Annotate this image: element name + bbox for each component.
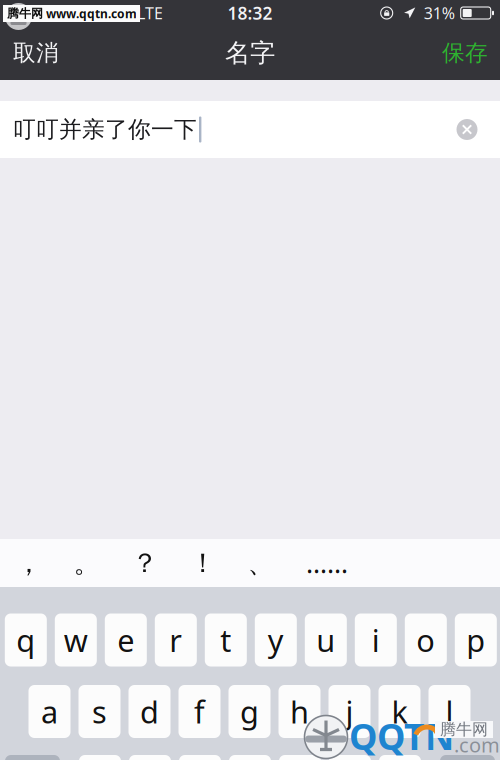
button[interactable]: 保存: [430, 26, 500, 80]
button[interactable]: l: [428, 685, 470, 738]
button[interactable]: j: [328, 685, 370, 738]
staticText: 、: [247, 547, 274, 579]
staticText: 31%: [424, 2, 455, 24]
staticText: LTE: [137, 2, 163, 24]
staticText: ……: [306, 545, 348, 581]
staticText: 腾牛网: [440, 720, 488, 739]
button[interactable]: ……: [290, 539, 364, 587]
staticText: g: [240, 691, 259, 732]
staticText: p: [466, 620, 485, 660]
staticText: 取消: [13, 39, 59, 67]
button[interactable]: t: [205, 613, 247, 666]
staticText: ？: [131, 547, 158, 579]
button[interactable]: d: [128, 685, 170, 738]
button[interactable]: q: [5, 613, 47, 666]
staticText: 叮叮并亲了你一下: [13, 116, 197, 143]
staticText: .com: [454, 731, 500, 758]
staticText: f: [194, 691, 205, 732]
button[interactable]: x: [129, 755, 171, 760]
staticText: w: [64, 620, 88, 660]
button[interactable]: p: [455, 613, 497, 666]
staticText: ，: [15, 547, 42, 579]
button[interactable]: i: [355, 613, 397, 666]
staticText: d: [140, 691, 159, 732]
button[interactable]: f: [178, 685, 220, 738]
staticText: o: [416, 620, 435, 660]
button[interactable]: r: [155, 613, 197, 666]
button[interactable]: b: [279, 755, 321, 760]
button[interactable]: u: [305, 613, 347, 666]
button[interactable]: a: [28, 685, 70, 738]
staticText: k: [391, 691, 407, 732]
button[interactable]: Clear text: [445, 107, 489, 151]
staticText: l: [445, 691, 453, 732]
button[interactable]: c: [179, 755, 221, 760]
button[interactable]: e: [105, 613, 147, 666]
staticText: i: [372, 620, 380, 660]
button[interactable]: v: [229, 755, 271, 760]
staticText: 。: [73, 547, 100, 579]
staticText: 名字: [225, 37, 275, 68]
button[interactable]: y: [255, 613, 297, 666]
staticText: j: [345, 691, 353, 732]
staticText: h: [290, 691, 309, 732]
button[interactable]: ？: [116, 539, 174, 587]
button[interactable]: g: [228, 685, 270, 738]
button[interactable]: 、: [232, 539, 290, 587]
button[interactable]: k: [378, 685, 420, 738]
staticText: QQTN: [349, 712, 454, 760]
button[interactable]: m: [379, 755, 421, 760]
staticText: www.qqtn.com: [46, 5, 137, 21]
staticText: r: [169, 620, 182, 660]
button[interactable]: s: [78, 685, 120, 738]
staticText: s: [92, 691, 107, 732]
button[interactable]: Shift: [5, 755, 60, 760]
staticText: a: [41, 691, 58, 732]
button[interactable]: w: [55, 613, 97, 666]
staticText: t: [220, 620, 231, 660]
staticText: y: [268, 620, 284, 660]
staticText: ！: [189, 547, 216, 579]
staticText: 18:32: [227, 1, 272, 24]
staticText: e: [117, 620, 134, 660]
button[interactable]: h: [278, 685, 320, 738]
button[interactable]: ，: [0, 539, 58, 587]
button[interactable]: n: [329, 755, 371, 760]
button[interactable]: Delete: [440, 755, 495, 760]
button[interactable]: ！: [174, 539, 232, 587]
staticText: u: [316, 620, 335, 660]
button[interactable]: 。: [58, 539, 116, 587]
staticText: q: [16, 620, 35, 660]
button[interactable]: z: [79, 755, 121, 760]
staticText: 保存: [442, 39, 488, 67]
button[interactable]: 取消: [0, 26, 72, 80]
button[interactable]: o: [405, 613, 447, 666]
staticText: 腾牛网: [7, 6, 43, 21]
